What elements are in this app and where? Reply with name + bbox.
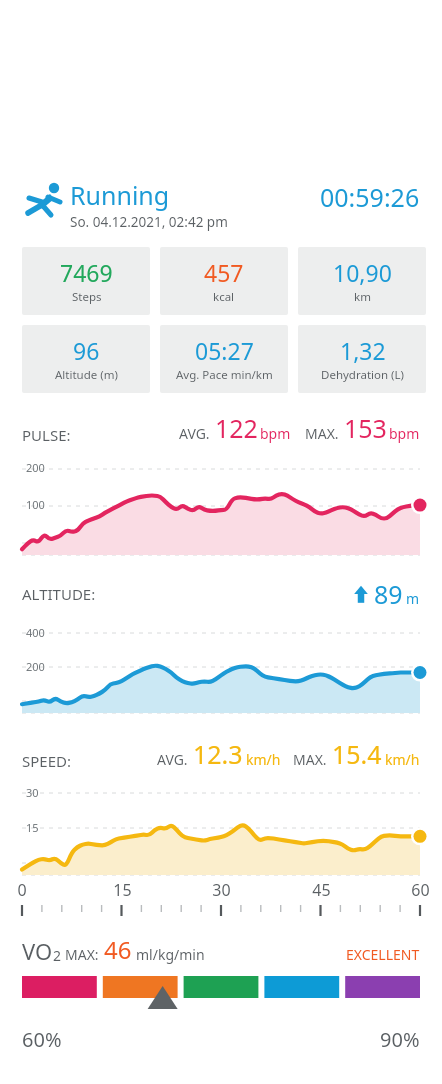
staticText: MAX:: [65, 945, 99, 964]
staticText: PULSE:: [22, 425, 71, 445]
staticText: So. 04.12.2021, 02:42 pm: [70, 213, 228, 231]
staticText: 12.3: [193, 737, 243, 771]
staticText: 60: [411, 879, 430, 901]
staticText: 100: [26, 497, 45, 512]
staticText: 200: [26, 460, 45, 475]
staticText: Steps: [72, 289, 102, 305]
button[interactable]: 457: [160, 247, 288, 315]
staticText: ml/kg/min: [136, 945, 205, 964]
staticText: 89: [374, 577, 403, 611]
staticText: 200: [26, 659, 45, 674]
button[interactable]: 10,90: [298, 247, 426, 315]
staticText: VO: [22, 936, 53, 966]
staticText: 10,90: [333, 257, 392, 288]
staticText: 400: [26, 625, 45, 640]
staticText: ALTITUDE:: [22, 584, 96, 604]
staticText: 153: [344, 411, 387, 445]
staticText: AVG.: [179, 424, 210, 443]
staticText: 00:59:26: [320, 180, 420, 214]
staticText: SPEED:: [22, 751, 71, 771]
staticText: 7469: [60, 257, 113, 288]
staticText: Running: [70, 178, 170, 212]
staticText: Altitude (m): [55, 367, 118, 383]
staticText: 0: [17, 879, 27, 901]
staticText: Dehydration (L): [321, 367, 404, 383]
staticText: 15: [113, 879, 132, 901]
staticText: Avg. Pace min/km: [176, 367, 273, 383]
staticText: 457: [204, 257, 244, 288]
staticText: 05:27: [195, 335, 254, 366]
staticText: AVG.: [157, 750, 188, 769]
staticText: 15: [26, 820, 39, 835]
staticText: EXCELLENT: [346, 945, 420, 964]
staticText: 15.4: [332, 737, 382, 771]
staticText: 30: [26, 785, 39, 800]
other: Running activity: [20, 178, 64, 218]
staticText: bpm: [260, 424, 291, 443]
staticText: m: [406, 589, 420, 608]
staticText: 46: [104, 933, 132, 966]
staticText: 90%: [380, 1026, 420, 1053]
staticText: kcal: [213, 289, 235, 305]
staticText: 96: [73, 335, 100, 366]
staticText: km: [354, 289, 371, 305]
staticText: 1,32: [340, 335, 386, 366]
button[interactable]: 05:27: [160, 325, 288, 393]
staticText: km/h: [385, 750, 420, 769]
staticText: 122: [215, 411, 258, 445]
staticText: 2: [53, 946, 62, 965]
staticText: bpm: [389, 424, 420, 443]
button[interactable]: 7469: [22, 247, 150, 315]
staticText: 30: [212, 879, 231, 901]
staticText: MAX.: [293, 750, 327, 769]
button[interactable]: Running activity: [20, 178, 420, 231]
staticText: 45: [312, 879, 331, 901]
staticText: km/h: [246, 750, 281, 769]
staticText: MAX.: [305, 424, 339, 443]
button[interactable]: 96: [22, 325, 150, 393]
button[interactable]: 1,32: [298, 325, 426, 393]
staticText: 60%: [22, 1026, 62, 1053]
